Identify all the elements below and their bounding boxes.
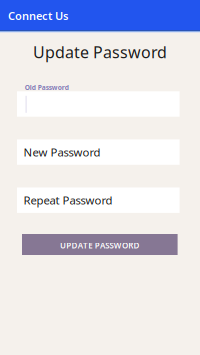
staticText: Connect Us	[8, 8, 68, 23]
button[interactable]: UPDATE PASSWORD	[22, 234, 178, 255]
staticText: Update Password	[33, 41, 167, 63]
staticText: UPDATE PASSWORD	[60, 240, 139, 251]
button[interactable]: Repeat Password	[17, 187, 180, 213]
button[interactable]: New Password	[17, 139, 180, 165]
staticText: New Password	[24, 144, 101, 160]
staticText: Old Password	[25, 83, 69, 92]
staticText: Repeat Password	[24, 192, 113, 208]
